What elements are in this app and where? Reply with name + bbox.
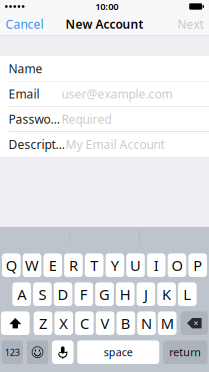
staticText: Y [111,255,119,275]
button[interactable]: B [116,311,135,335]
staticText: Password [8,111,61,127]
staticText: Next [177,16,203,32]
staticText: G [99,284,110,304]
button[interactable]: R [64,253,83,277]
staticText: W [25,255,39,275]
button[interactable]: Z [34,311,52,335]
staticText: Required [61,111,111,127]
button[interactable]: Emoji [27,340,48,364]
staticText: space [104,345,133,359]
button[interactable]: P [188,253,207,277]
button[interactable]: A [12,282,31,306]
button[interactable]: G [95,282,114,306]
button[interactable]: Next [177,13,209,35]
staticText: Email [8,86,39,102]
button[interactable]: return [163,340,207,364]
staticText: C [80,313,89,333]
staticText: M [161,313,174,333]
staticText: A [17,284,26,304]
button[interactable]: T [85,253,103,277]
button[interactable]: Shift [1,311,30,335]
staticText: Name [8,61,42,77]
button[interactable]: V [96,311,114,335]
staticText: R [69,255,78,275]
staticText: J [144,284,148,304]
staticText: D [58,284,69,304]
button[interactable]: space [77,340,159,364]
staticText: U [130,255,141,275]
staticText: N [141,313,152,333]
button[interactable]: D [54,282,72,306]
staticText: T [90,255,98,275]
button[interactable]: O [168,253,186,277]
button[interactable]: Dictation [52,340,73,364]
staticText: Description [8,136,65,152]
button[interactable]: U [126,253,145,277]
staticText: X [59,313,68,333]
staticText: Q [6,255,17,275]
button[interactable]: N [137,311,156,335]
staticText: New Account [65,16,143,32]
staticText: P [193,255,202,275]
button[interactable]: W [23,253,41,277]
staticText: O [171,255,182,275]
button[interactable]: Y [106,253,124,277]
button[interactable]: 123 [1,340,23,364]
staticText: L [183,284,191,304]
button[interactable]: H [116,282,134,306]
staticText: 10:00 [95,0,118,13]
button[interactable]: Cancel [0,13,43,35]
staticText: return [169,345,201,359]
button[interactable]: E [43,253,62,277]
staticText: V [101,313,110,333]
staticText: Z [39,313,47,333]
button[interactable]: F [74,282,93,306]
button[interactable]: Description [0,132,209,157]
staticText: My Email Account [65,136,164,152]
staticText: Cancel [5,16,43,32]
staticText: H [120,284,131,304]
staticText: B [121,313,131,333]
button[interactable]: X [54,311,73,335]
button[interactable]: M [158,311,176,335]
button[interactable]: Password [0,107,209,132]
button[interactable]: Email [0,81,209,106]
staticText: K [162,284,171,304]
staticText: F [80,284,88,304]
button[interactable]: Name [0,56,209,81]
staticText: E [49,255,57,275]
staticText: I [154,255,159,275]
button[interactable]: Delete [181,311,208,335]
staticText: 123 [5,346,20,358]
button[interactable]: Q [2,253,21,277]
staticText: user@example.com [61,86,172,102]
button[interactable]: K [157,282,176,306]
button[interactable]: J [137,282,155,306]
staticText: S [38,284,46,304]
button[interactable]: C [75,311,94,335]
button[interactable]: S [33,282,52,306]
button[interactable]: I [147,253,166,277]
button[interactable]: L [178,282,197,306]
